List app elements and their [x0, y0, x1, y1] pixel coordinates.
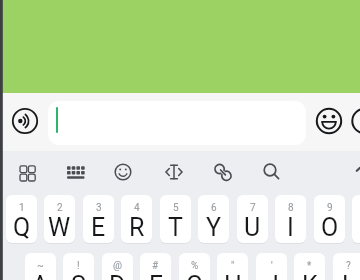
- staticText: U: [244, 213, 261, 242]
- staticText: S: [71, 271, 86, 280]
- staticText: %: [191, 260, 199, 272]
- staticText: F: [149, 271, 163, 280]
- button[interactable]: ?: [333, 253, 360, 280]
- staticText: T: [168, 213, 183, 242]
- button[interactable]: [105, 154, 141, 190]
- staticText: Q: [13, 213, 31, 242]
- staticText: G: [186, 271, 204, 280]
- staticText: E: [91, 213, 106, 242]
- button[interactable]: 6: [198, 195, 229, 243]
- button[interactable]: [11, 107, 39, 135]
- button[interactable]: 3: [83, 195, 114, 243]
- button[interactable]: 9: [314, 195, 345, 243]
- button[interactable]: *: [294, 253, 325, 280]
- staticText: ": [231, 260, 235, 272]
- button[interactable]: [205, 154, 241, 190]
- staticText: @: [113, 260, 122, 272]
- staticText: 2: [57, 202, 63, 214]
- staticText: H: [224, 271, 242, 280]
- staticText: ~: [37, 260, 44, 272]
- staticText: I: [287, 213, 294, 242]
- staticText: R: [129, 213, 145, 242]
- button[interactable]: [48, 101, 306, 145]
- button[interactable]: 8: [275, 195, 306, 243]
- staticText: K: [302, 271, 318, 280]
- button[interactable]: %: [179, 253, 210, 280]
- staticText: O: [321, 213, 339, 242]
- staticText: W: [48, 213, 71, 242]
- button[interactable]: [58, 154, 94, 190]
- button[interactable]: [156, 154, 192, 190]
- staticText: J: [265, 271, 279, 280]
- staticText: L: [342, 271, 356, 280]
- button[interactable]: ": [217, 253, 248, 280]
- staticText: A: [32, 271, 49, 280]
- button[interactable]: ~: [25, 253, 56, 280]
- button[interactable]: ': [256, 253, 287, 280]
- staticText: 5: [173, 202, 179, 214]
- staticText: 7: [250, 202, 256, 214]
- button[interactable]: 2: [44, 195, 75, 243]
- button[interactable]: #: [140, 253, 171, 280]
- staticText: 8: [288, 202, 294, 214]
- button[interactable]: [315, 107, 343, 135]
- button[interactable]: 4: [121, 195, 152, 243]
- staticText: 1: [19, 202, 25, 214]
- button[interactable]: 1: [6, 195, 37, 243]
- button[interactable]: 5: [160, 195, 191, 243]
- staticText: 3: [96, 202, 102, 214]
- button[interactable]: [0, 0, 360, 93]
- button[interactable]: @: [102, 253, 133, 280]
- staticText: 4: [134, 202, 140, 214]
- staticText: ': [271, 260, 273, 272]
- staticText: 6: [211, 202, 217, 214]
- button[interactable]: [252, 154, 288, 190]
- button[interactable]: 7: [237, 195, 268, 243]
- staticText: D: [109, 271, 126, 280]
- staticText: ?: [346, 260, 351, 272]
- staticText: #: [152, 260, 159, 272]
- button[interactable]: !: [63, 253, 94, 280]
- button[interactable]: 0: [352, 195, 360, 243]
- staticText: !: [77, 260, 80, 272]
- button[interactable]: [10, 154, 46, 190]
- staticText: Y: [206, 213, 222, 242]
- staticText: *: [307, 260, 312, 272]
- staticText: 9: [327, 202, 333, 214]
